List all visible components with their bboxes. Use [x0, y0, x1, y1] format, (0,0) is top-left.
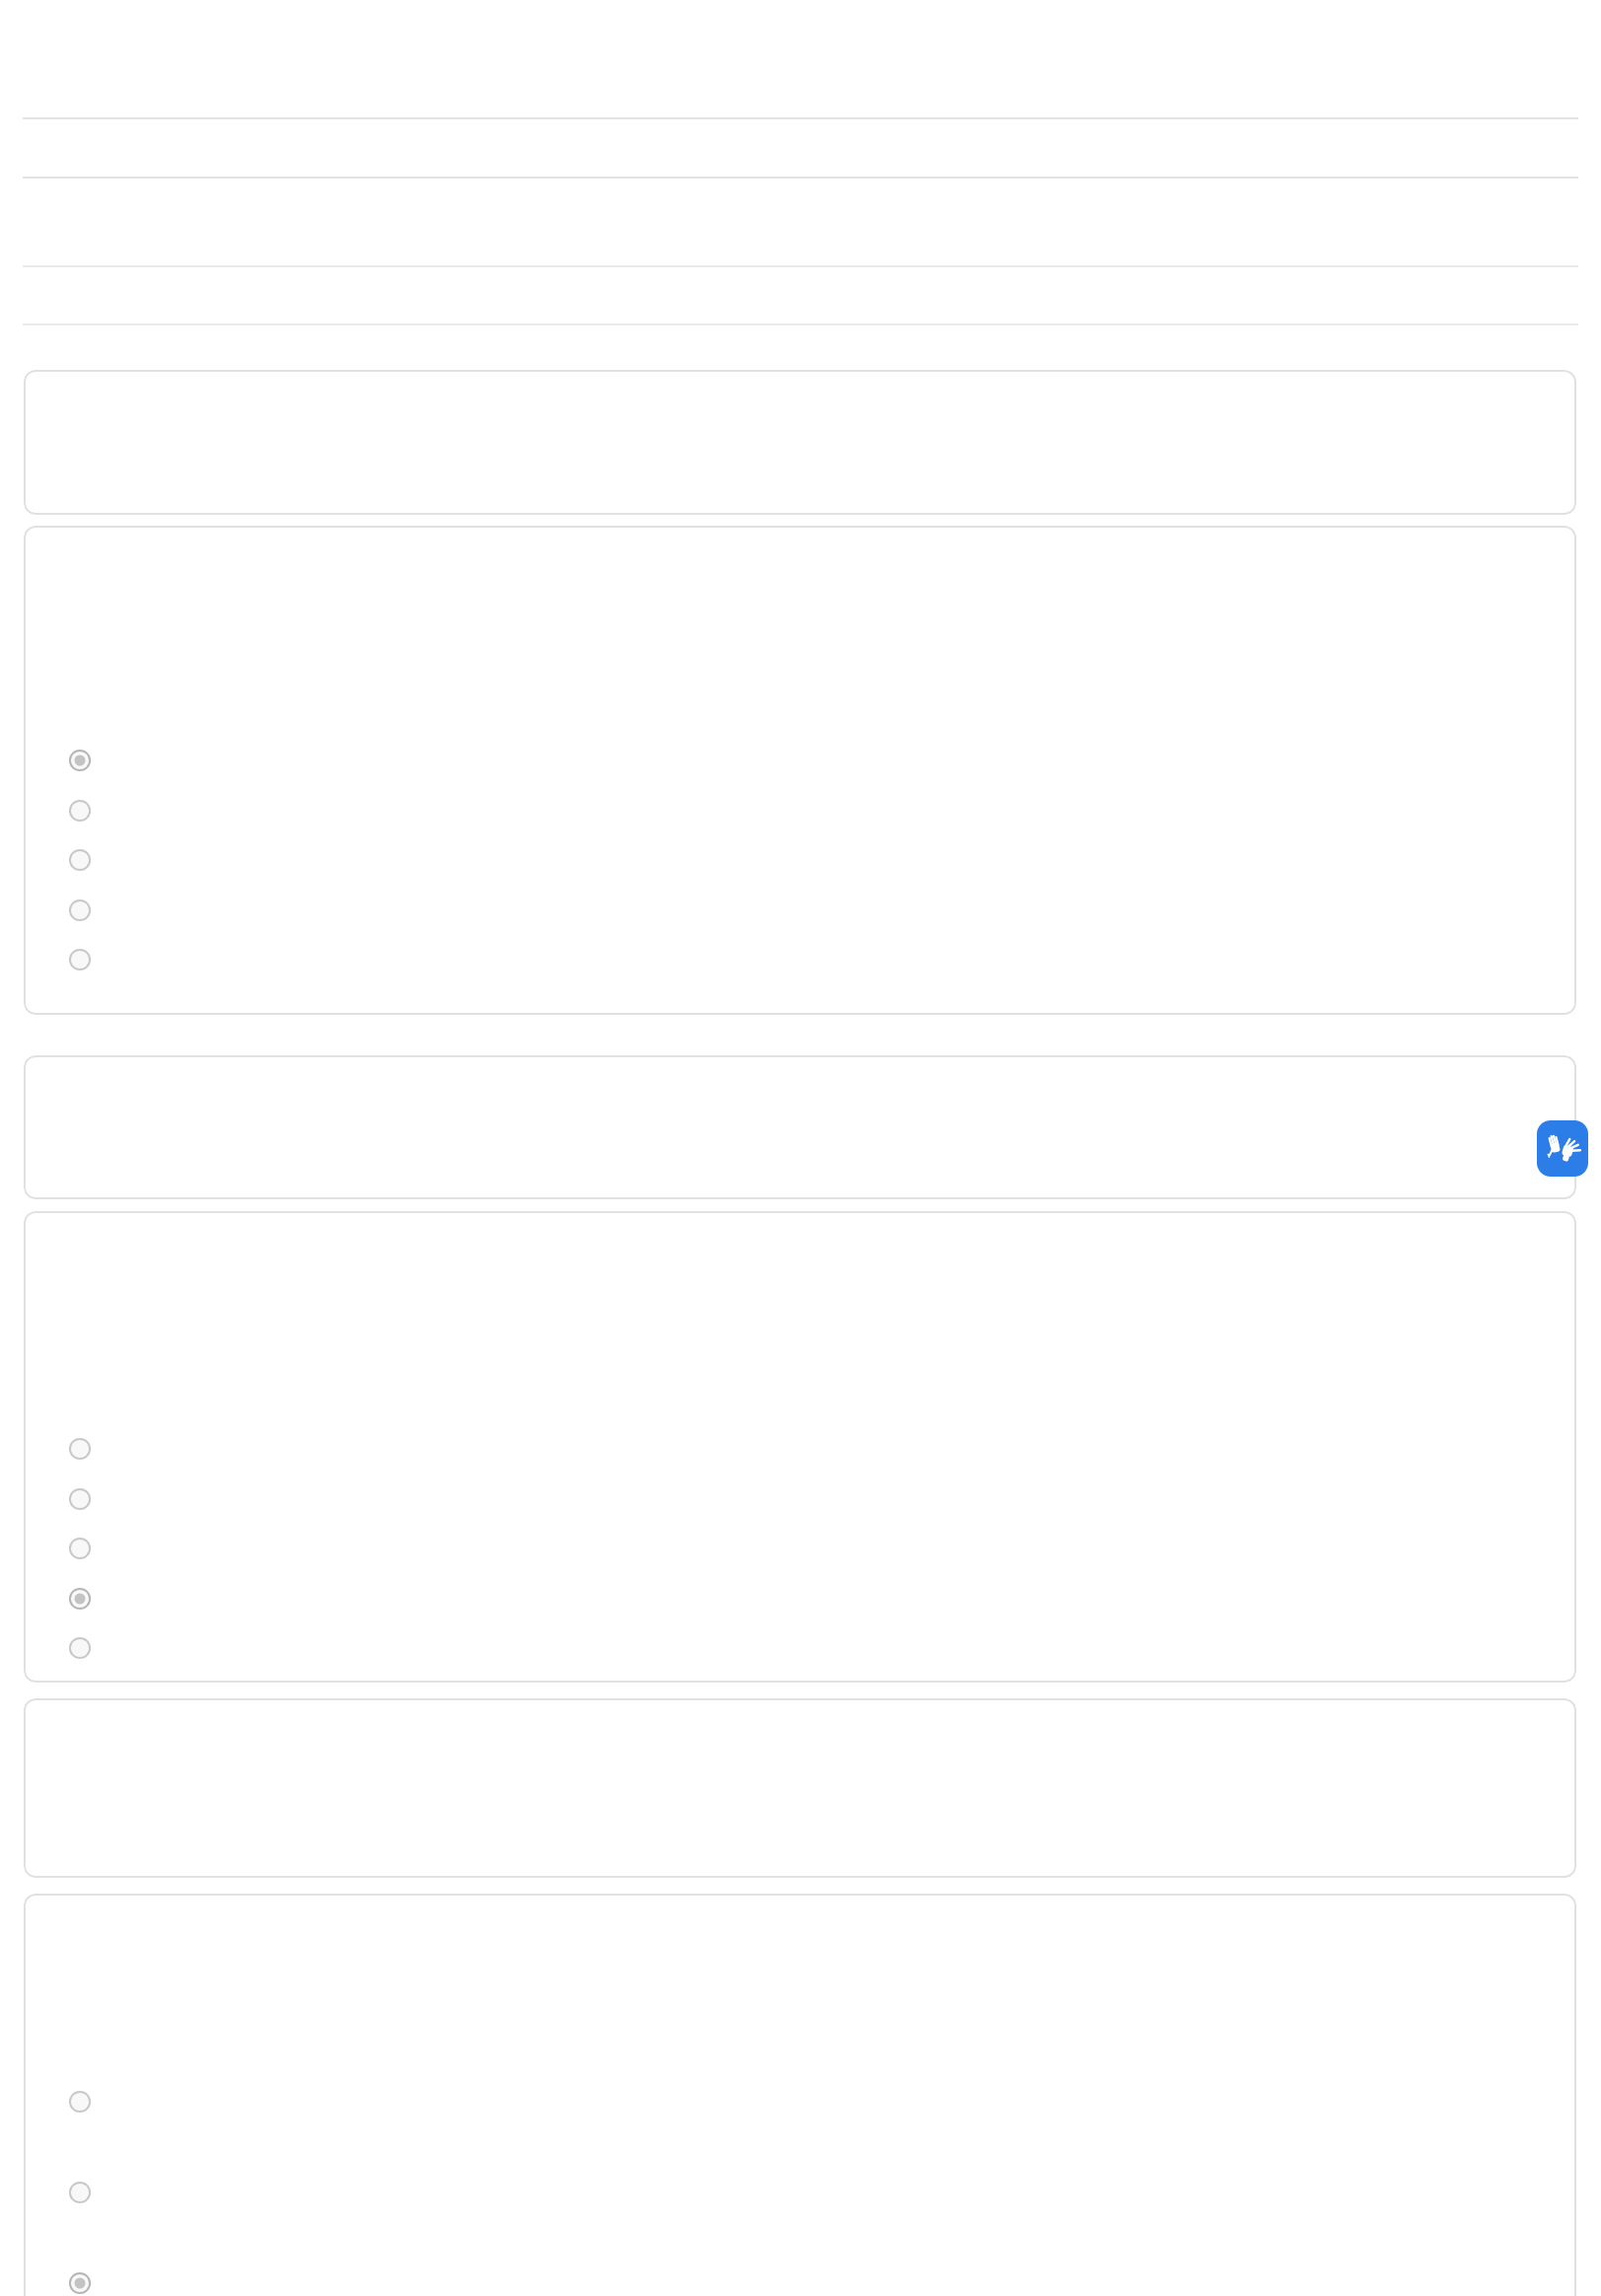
button[interactable]: Option	[58, 2171, 102, 2214]
button[interactable]: Option	[58, 1477, 102, 1521]
button[interactable]	[24, 370, 1576, 515]
button[interactable]: Option	[58, 938, 102, 981]
button[interactable]: Sign language accessibility	[1537, 1120, 1588, 1177]
button[interactable]: Option	[58, 1626, 102, 1670]
button[interactable]	[24, 1698, 1576, 1878]
button[interactable]	[24, 1211, 1576, 1683]
button[interactable]	[24, 526, 1576, 1015]
button[interactable]: Selected option	[58, 2261, 102, 2296]
button[interactable]: Option	[58, 2080, 102, 2123]
button[interactable]: Option	[58, 838, 102, 882]
button[interactable]: Selected option	[58, 1577, 102, 1620]
button[interactable]: Selected option	[58, 739, 102, 782]
button[interactable]: Option	[58, 1527, 102, 1570]
button[interactable]: Option	[58, 889, 102, 932]
button[interactable]: Option	[58, 789, 102, 832]
button[interactable]	[24, 1055, 1576, 1199]
button[interactable]: Option	[58, 1427, 102, 1471]
